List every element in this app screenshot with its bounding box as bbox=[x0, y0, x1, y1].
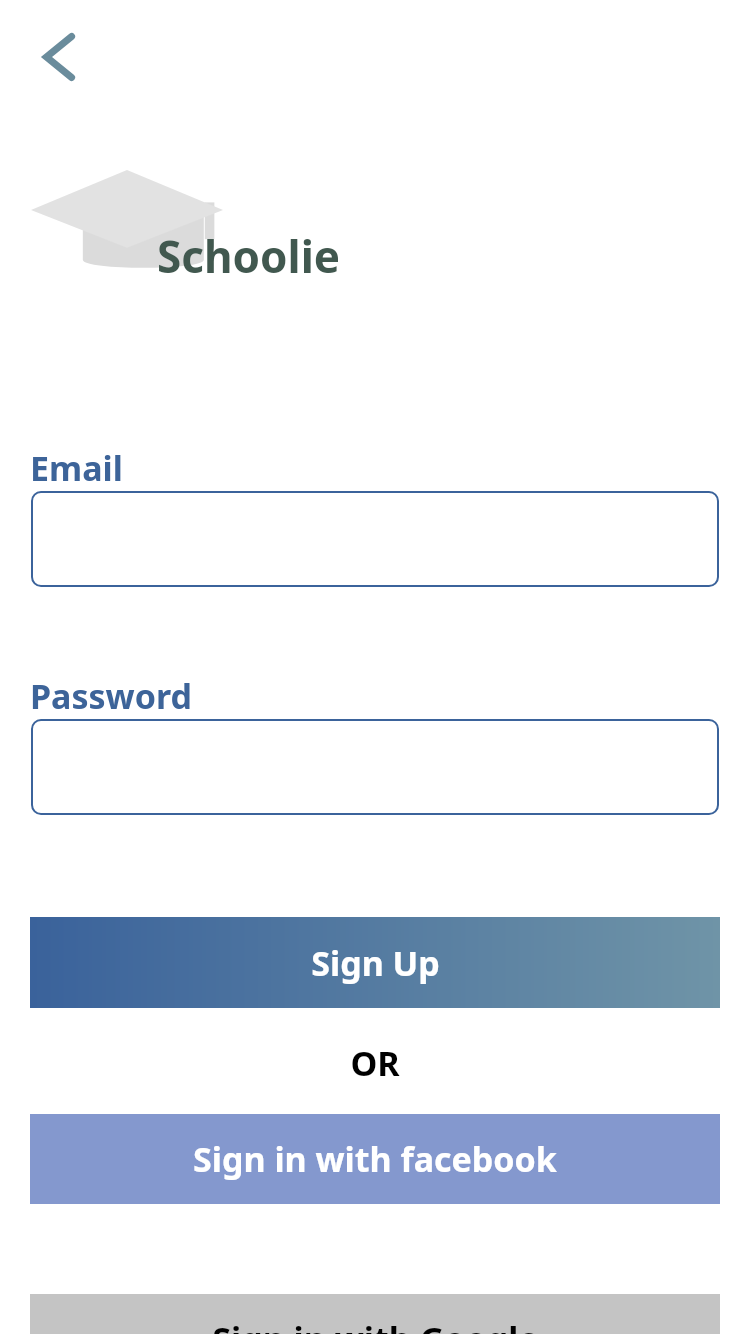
button[interactable]: Sign in with Google bbox=[30, 1294, 720, 1334]
button[interactable]: Sign Up bbox=[30, 917, 720, 1008]
staticText: Password bbox=[30, 673, 192, 719]
button[interactable]: Email input bbox=[31, 491, 719, 587]
staticText: Schoolie bbox=[157, 226, 341, 286]
staticText: Sign in with Google bbox=[212, 1316, 539, 1334]
button[interactable]: Back bbox=[24, 26, 92, 88]
staticText: Email bbox=[30, 445, 123, 491]
staticText: OR bbox=[350, 1040, 400, 1086]
button[interactable]: Sign in with facebook bbox=[30, 1114, 720, 1204]
staticText: Sign in with facebook bbox=[193, 1136, 557, 1182]
button[interactable]: Password input bbox=[31, 719, 719, 815]
staticText: Sign Up bbox=[311, 940, 440, 986]
